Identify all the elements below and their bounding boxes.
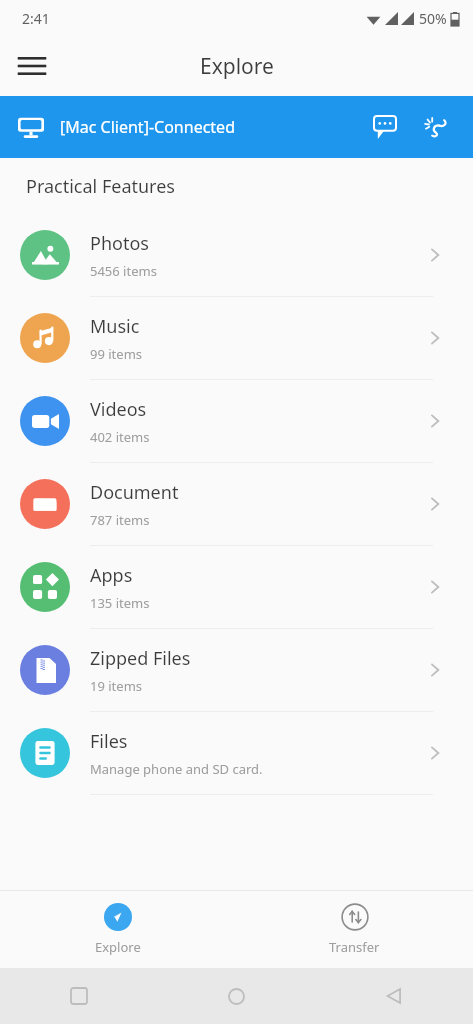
staticText: 99 items (90, 345, 143, 363)
staticText: Zipped Files (90, 646, 191, 671)
button[interactable]: Home (212, 972, 260, 1020)
staticText: Explore (95, 938, 141, 956)
staticText: 2:41 (22, 9, 50, 28)
button[interactable]: Messages (363, 105, 407, 149)
staticText: Explore (200, 52, 274, 81)
staticText: Files (90, 729, 128, 754)
button[interactable]: Files (0, 712, 473, 794)
staticText: Document (90, 480, 179, 505)
staticText: Apps (90, 563, 133, 588)
staticText: 5456 items (90, 262, 157, 280)
button[interactable]: Music (0, 297, 473, 379)
staticText: Videos (90, 397, 147, 422)
button[interactable]: Explore (69, 897, 167, 962)
staticText: 402 items (90, 428, 150, 446)
staticText: [Mac Client]-Connected (60, 116, 235, 138)
staticText: Music (90, 314, 140, 339)
button[interactable]: Recents (55, 972, 103, 1020)
button[interactable]: Disconnect (415, 105, 459, 149)
button[interactable]: Document (0, 463, 473, 545)
button[interactable]: Back (370, 972, 418, 1020)
staticText: 135 items (90, 594, 150, 612)
button[interactable]: Videos (0, 380, 473, 462)
staticText: Practical Features (26, 174, 175, 199)
staticText: 50% (419, 9, 447, 28)
staticText: Transfer (329, 938, 380, 956)
button[interactable]: [Mac Client]-Connected (0, 96, 473, 158)
staticText: 787 items (90, 511, 150, 529)
button[interactable]: Menu (8, 42, 56, 90)
staticText: 19 items (90, 677, 143, 695)
button[interactable]: Photos (0, 214, 473, 296)
staticText: Photos (90, 231, 149, 256)
staticText: Manage phone and SD card. (90, 760, 263, 778)
button[interactable]: Zipped Files (0, 629, 473, 711)
button[interactable]: Apps (0, 546, 473, 628)
button[interactable]: Transfer (303, 897, 406, 962)
